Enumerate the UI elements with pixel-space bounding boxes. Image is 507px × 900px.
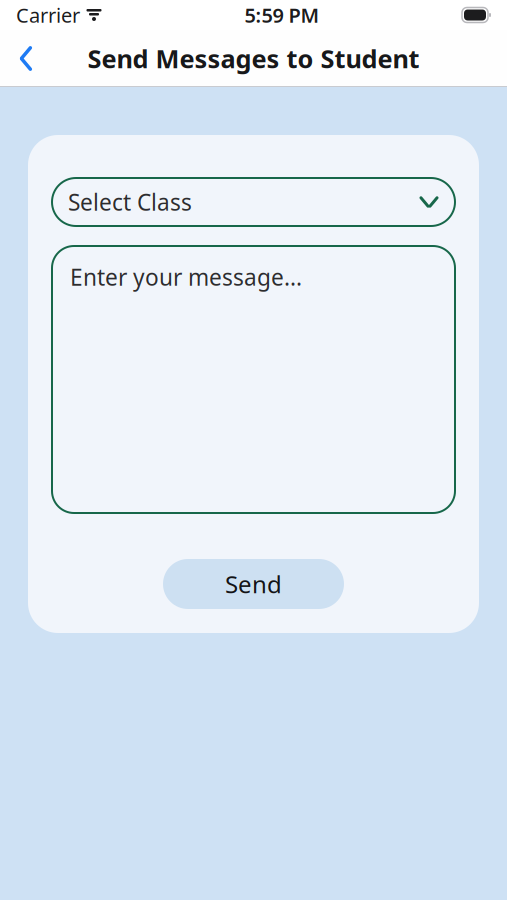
staticText: Send — [225, 568, 282, 600]
button[interactable]: Select Class — [52, 178, 455, 226]
button[interactable]: Enter your message... — [52, 246, 455, 513]
button[interactable]: Back — [0, 30, 52, 87]
staticText: Carrier — [16, 2, 80, 28]
staticText: 5:59 PM — [244, 2, 319, 28]
button[interactable]: Send — [163, 559, 344, 609]
staticText: Send Messages to Student — [87, 42, 419, 75]
staticText: Enter your message... — [70, 262, 302, 292]
staticText: Select Class — [68, 187, 192, 217]
